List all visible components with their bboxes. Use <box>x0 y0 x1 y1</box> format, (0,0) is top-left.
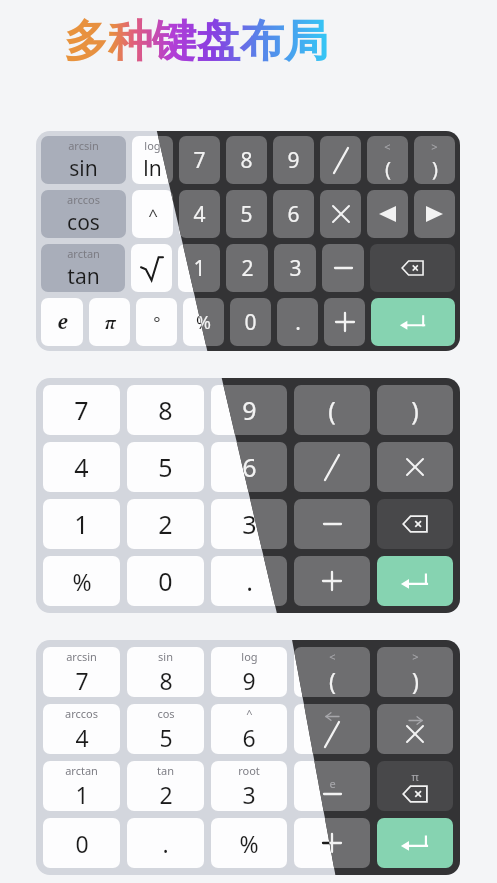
button[interactable]: 4 <box>179 190 220 238</box>
button[interactable]: 4 <box>43 442 120 492</box>
button[interactable]: 6 <box>211 442 287 492</box>
button[interactable]: ° <box>136 298 177 346</box>
button[interactable]: < <box>294 647 370 697</box>
button[interactable]: Minus <box>322 244 364 292</box>
button[interactable]: tan <box>127 761 204 811</box>
button[interactable]: 3 <box>211 499 287 549</box>
button[interactable]: e <box>41 298 83 346</box>
button[interactable]: 7 <box>43 385 120 435</box>
button[interactable]: Enter <box>371 298 455 346</box>
button[interactable]: ) <box>377 385 453 435</box>
button[interactable]: 3 <box>274 244 316 292</box>
button[interactable]: 3 <box>274 244 316 292</box>
button[interactable]: arcsin <box>43 647 120 697</box>
button[interactable]: Backspace <box>377 761 453 811</box>
button[interactable]: 0 <box>43 818 120 868</box>
button[interactable]: 1 <box>178 244 220 292</box>
button[interactable]: Divide <box>294 442 370 492</box>
button[interactable]: arccos <box>43 704 120 754</box>
button[interactable]: Backspace <box>377 499 453 549</box>
button[interactable]: % <box>183 298 224 346</box>
button[interactable]: π <box>89 298 130 346</box>
button[interactable]: % <box>211 818 287 868</box>
button[interactable]: 0 <box>127 556 204 606</box>
button[interactable]: Enter <box>377 818 453 868</box>
button[interactable]: Minus <box>294 761 370 811</box>
button[interactable]: < <box>294 647 370 697</box>
button[interactable]: log <box>132 136 173 184</box>
button[interactable]: arcsin <box>41 136 126 184</box>
button[interactable]: 9 <box>273 136 314 184</box>
button[interactable]: ° <box>136 298 177 346</box>
button[interactable]: Square root <box>131 244 172 292</box>
button[interactable]: > <box>414 136 455 184</box>
button[interactable]: 1 <box>43 499 120 549</box>
button[interactable]: % <box>43 556 120 606</box>
button[interactable]: Multiply <box>320 190 361 238</box>
button[interactable]: 5 <box>226 190 267 238</box>
button[interactable]: ^ <box>211 704 287 754</box>
button[interactable]: 4 <box>179 190 220 238</box>
button[interactable]: 5 <box>127 442 204 492</box>
button[interactable]: 5 <box>127 442 204 492</box>
button[interactable]: tan <box>127 761 204 811</box>
button[interactable]: 2 <box>127 499 204 549</box>
button[interactable]: arcsin <box>41 136 126 184</box>
button[interactable]: Divide <box>294 704 370 754</box>
button[interactable]: % <box>211 818 287 868</box>
button[interactable]: log <box>211 647 287 697</box>
button[interactable]: . <box>211 556 287 606</box>
button[interactable]: Plus <box>324 298 365 346</box>
button[interactable]: Minus <box>294 761 370 811</box>
button[interactable]: sin <box>127 647 204 697</box>
button[interactable]: > <box>414 136 455 184</box>
button[interactable]: . <box>277 298 318 346</box>
button[interactable]: 2 <box>127 499 204 549</box>
button[interactable]: 4 <box>43 442 120 492</box>
button[interactable]: Plus <box>294 556 370 606</box>
button[interactable]: 8 <box>127 385 204 435</box>
button[interactable]: arctan <box>41 244 125 292</box>
button[interactable]: 9 <box>211 385 287 435</box>
button[interactable]: 8 <box>226 136 267 184</box>
button[interactable]: . <box>211 556 287 606</box>
button[interactable]: . <box>127 818 204 868</box>
button[interactable]: ^ <box>211 704 287 754</box>
button[interactable]: 0 <box>230 298 271 346</box>
button[interactable]: Backspace <box>370 244 455 292</box>
button[interactable]: Minus <box>294 499 370 549</box>
button[interactable]: 8 <box>127 385 204 435</box>
button[interactable]: 7 <box>179 136 220 184</box>
button[interactable]: 9 <box>211 385 287 435</box>
button[interactable]: Plus <box>294 818 370 868</box>
button[interactable]: Minus <box>322 244 364 292</box>
button[interactable]: Plus <box>294 556 370 606</box>
button[interactable]: arctan <box>43 761 120 811</box>
button[interactable]: . <box>127 818 204 868</box>
button[interactable]: 1 <box>43 499 120 549</box>
button[interactable]: cos <box>127 704 204 754</box>
button[interactable]: Enter <box>377 818 453 868</box>
button[interactable]: ^ <box>132 190 173 238</box>
button[interactable]: < <box>367 136 408 184</box>
button[interactable]: % <box>183 298 224 346</box>
button[interactable]: arctan <box>43 761 120 811</box>
button[interactable]: arcsin <box>43 647 120 697</box>
button[interactable]: 7 <box>43 385 120 435</box>
button[interactable]: 6 <box>273 190 314 238</box>
button[interactable]: Minus <box>294 499 370 549</box>
button[interactable]: Divide <box>294 442 370 492</box>
button[interactable]: 0 <box>127 556 204 606</box>
button[interactable]: Move left <box>367 190 408 238</box>
button[interactable]: Divide <box>320 136 361 184</box>
button[interactable]: . <box>277 298 318 346</box>
button[interactable]: 0 <box>43 818 120 868</box>
button[interactable]: 7 <box>179 136 220 184</box>
button[interactable]: 2 <box>226 244 268 292</box>
button[interactable]: ^ <box>132 190 173 238</box>
button[interactable]: sin <box>127 647 204 697</box>
button[interactable]: log <box>132 136 173 184</box>
button[interactable]: arccos <box>41 190 126 238</box>
button[interactable]: Plus <box>324 298 365 346</box>
button[interactable]: 2 <box>226 244 268 292</box>
